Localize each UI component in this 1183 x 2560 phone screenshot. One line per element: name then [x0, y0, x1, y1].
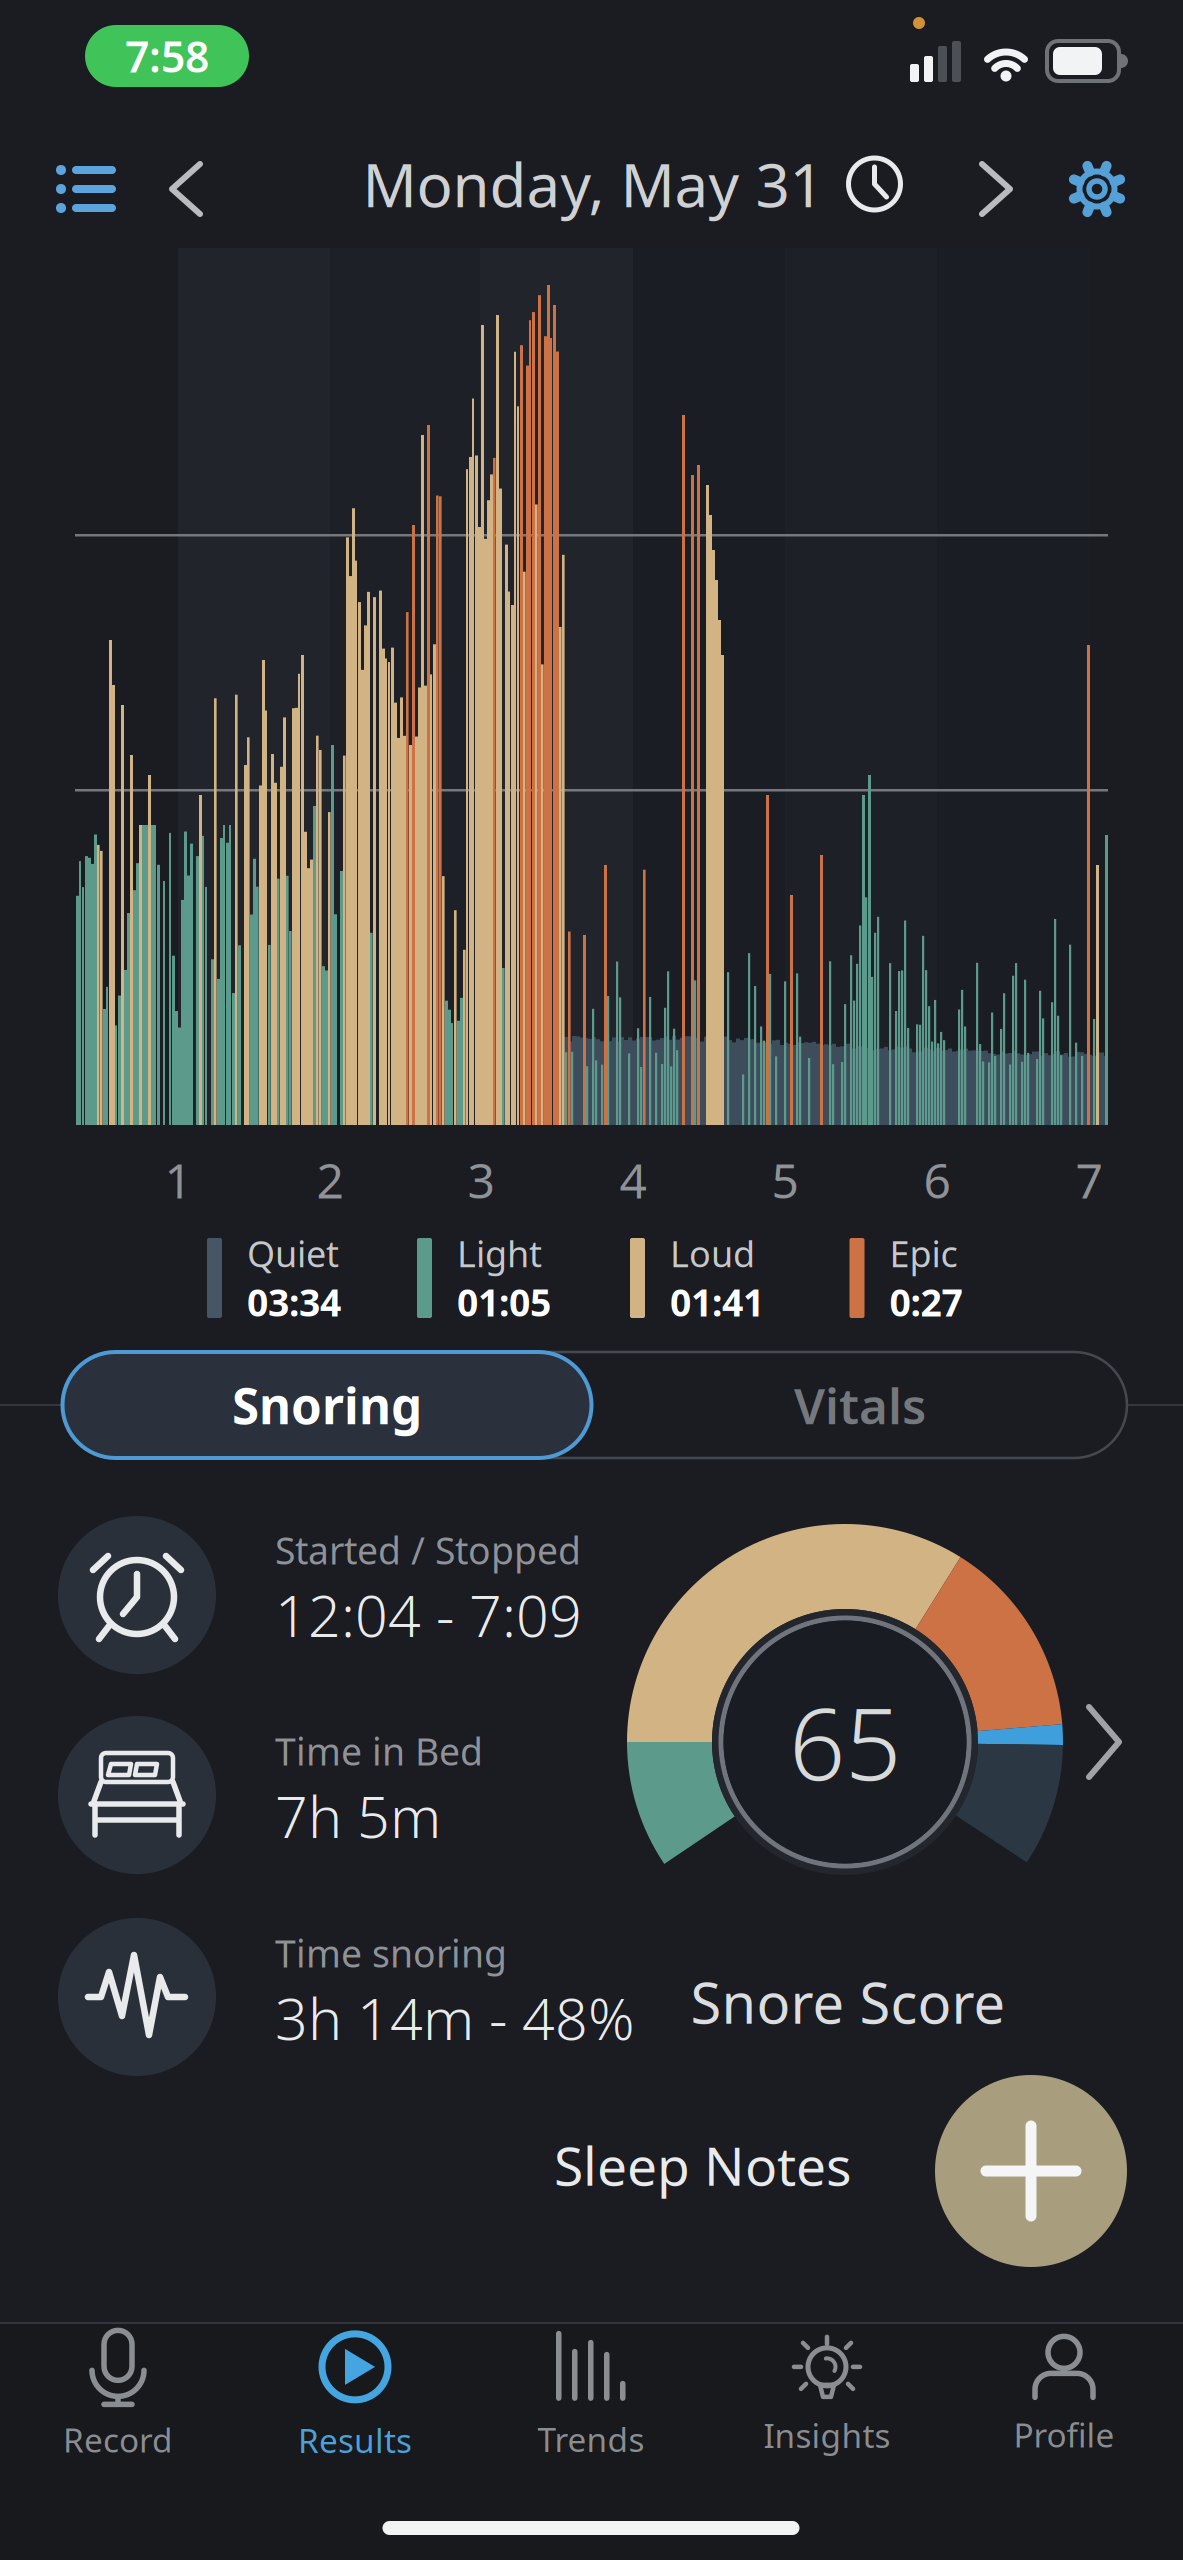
staticText: 01:41	[670, 1277, 764, 1327]
button[interactable]: Profile	[964, 2316, 1164, 2476]
staticText: Started / Stopped	[275, 1525, 581, 1575]
staticText: Profile	[1013, 2412, 1114, 2457]
staticText: Quiet	[247, 1229, 339, 1277]
staticText: 2	[316, 1148, 343, 1212]
button[interactable]: Add sleep note	[935, 2075, 1127, 2267]
staticText: 5	[771, 1148, 798, 1212]
staticText: 1	[164, 1148, 191, 1212]
button[interactable]: Record	[18, 2316, 218, 2476]
staticText: 65	[789, 1676, 901, 1807]
staticText: 12:04 - 7:09	[275, 1577, 582, 1653]
staticText: Loud	[670, 1229, 755, 1277]
staticText: Monday, May 31	[362, 144, 823, 224]
staticText: 7:58	[125, 28, 209, 84]
staticText: 3	[467, 1148, 494, 1212]
staticText: Epic	[889, 1229, 957, 1277]
staticText: 4	[619, 1148, 646, 1212]
staticText: Results	[298, 2418, 412, 2462]
button[interactable]: Settings	[1068, 160, 1126, 218]
staticText: 3h 14m - 48%	[275, 1980, 635, 2056]
button[interactable]: Time	[85, 25, 249, 87]
button[interactable]: Sessions list	[55, 160, 117, 217]
button[interactable]: Results	[255, 2316, 455, 2476]
staticText: 6	[923, 1148, 950, 1212]
button[interactable]: Trends	[491, 2316, 691, 2476]
staticText: 0:27	[889, 1277, 962, 1327]
staticText: 01:05	[457, 1277, 551, 1327]
staticText: Vitals	[794, 1372, 926, 1438]
button[interactable]: Snoring	[62, 1352, 591, 1458]
staticText: Snoring	[232, 1372, 422, 1438]
staticText: Time snoring	[275, 1928, 507, 1978]
button[interactable]: Next night	[979, 161, 1013, 217]
staticText: Sleep Notes	[554, 2130, 852, 2200]
staticText: Time in Bed	[275, 1726, 483, 1776]
staticText: 7h 5m	[275, 1778, 441, 1854]
button[interactable]: Vitals	[610, 1352, 1110, 1458]
button[interactable]: Previous night	[169, 161, 203, 217]
staticText: Insights	[763, 2413, 890, 2457]
button[interactable]: Choose date	[362, 144, 903, 224]
staticText: Light	[457, 1229, 542, 1277]
staticText: Snore Score	[690, 1965, 1005, 2039]
staticText: Trends	[537, 2417, 644, 2461]
staticText: Record	[63, 2417, 173, 2462]
button[interactable]: Insights	[727, 2316, 927, 2476]
staticText: 03:34	[247, 1277, 341, 1327]
button[interactable]: Score details	[1086, 1704, 1122, 1780]
staticText: 7	[1075, 1148, 1102, 1212]
